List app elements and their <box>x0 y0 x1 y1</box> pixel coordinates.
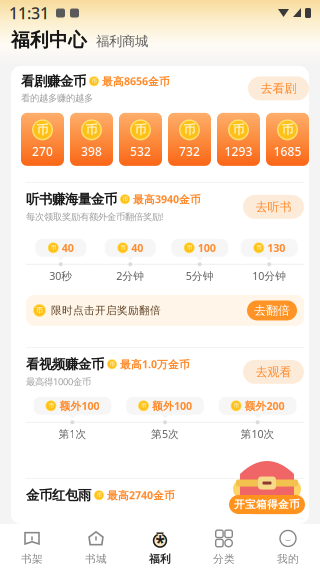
button[interactable]: 去观看 <box>243 360 304 384</box>
staticText: 最高2740金币 <box>107 488 175 502</box>
staticText: 1685 <box>273 143 301 159</box>
staticText: 币 <box>122 196 127 202</box>
staticText: 2分钟 <box>116 269 144 283</box>
button[interactable]: 书城 <box>64 524 128 568</box>
staticText: 看的越多赚的越多 <box>21 92 93 104</box>
staticText: 福利 <box>149 552 171 565</box>
staticText: 币 <box>134 122 146 137</box>
staticText: 看剧赚金币 <box>21 73 86 89</box>
button[interactable]: 去翻倍 <box>247 300 297 320</box>
staticText: 额外100 <box>59 399 99 413</box>
button[interactable]: 去看剧 <box>248 76 309 100</box>
button[interactable]: 开宝箱得金币 <box>229 446 305 510</box>
button[interactable]: 我的 <box>256 524 320 568</box>
staticText: 100 <box>198 241 216 255</box>
staticText: 币 <box>91 78 96 84</box>
staticText: 第1次 <box>58 427 86 441</box>
staticText: 币 <box>36 306 43 314</box>
staticText: 去翻倍 <box>254 303 290 318</box>
staticText: 1293 <box>224 143 252 159</box>
staticText: 限时点击开启奖励翻倍 <box>51 304 161 317</box>
staticText: 币 <box>234 402 239 409</box>
staticText: 最高得1000金币 <box>26 375 91 388</box>
staticText: 币 <box>96 492 101 498</box>
staticText: 最高3940金币 <box>133 192 201 206</box>
staticText: 币 <box>232 122 244 137</box>
staticText: 金币红包雨 <box>26 487 91 503</box>
button[interactable]: 福利商城 <box>96 33 148 51</box>
staticText: 11:31 <box>9 2 49 24</box>
staticText: 币 <box>141 402 146 409</box>
staticText: 40 <box>62 241 74 255</box>
staticText: 第10次 <box>241 427 275 441</box>
staticText: 分类 <box>213 552 235 565</box>
staticText: 最高1.0万金币 <box>120 357 190 371</box>
staticText: 币 <box>120 244 125 251</box>
staticText: 398 <box>81 143 102 159</box>
staticText: 币 <box>281 122 293 137</box>
staticText: 书架 <box>21 552 43 565</box>
staticText: 532 <box>130 143 151 159</box>
button[interactable]: 去听书 <box>243 195 304 219</box>
staticText: 额外100 <box>152 399 192 413</box>
staticText: 每次领取奖励有额外金币翻倍奖励! <box>26 210 164 223</box>
staticText: 听书赚海量金币 <box>26 191 117 207</box>
staticText: 5分钟 <box>186 269 214 283</box>
button[interactable]: 分类 <box>192 524 256 568</box>
staticText: 币 <box>48 402 53 409</box>
staticText: 732 <box>179 143 200 159</box>
staticText: 去看剧 <box>260 81 296 96</box>
staticText: 福利中心 <box>11 28 87 51</box>
button[interactable]: 书架 <box>0 524 64 568</box>
staticText: 第5次 <box>151 427 179 441</box>
staticText: 币 <box>256 244 261 251</box>
staticText: 领红包 <box>255 495 291 510</box>
staticText: 币 <box>183 122 195 137</box>
staticText: * <box>155 531 164 554</box>
staticText: 币 <box>109 361 114 367</box>
staticText: 币 <box>36 122 48 137</box>
staticText: 看视频赚金币 <box>26 356 104 372</box>
staticText: 币 <box>187 244 192 251</box>
staticText: 40 <box>131 241 143 255</box>
staticText: 30秒 <box>49 269 72 283</box>
staticText: 最高8656金币 <box>102 74 170 88</box>
staticText: 130 <box>267 241 285 255</box>
staticText: 去听书 <box>255 199 291 214</box>
staticText: 我的 <box>277 552 299 565</box>
staticText: 开宝箱得金币 <box>234 498 300 511</box>
button[interactable]: * <box>128 524 192 568</box>
staticText: 书城 <box>85 552 107 565</box>
staticText: 币 <box>51 244 56 251</box>
staticText: 币 <box>85 122 97 137</box>
staticText: 额外200 <box>245 399 285 413</box>
staticText: 去观看 <box>255 364 291 379</box>
staticText: 福利商城 <box>96 33 148 49</box>
staticText: 270 <box>32 143 53 159</box>
staticText: 10分钟 <box>252 269 286 283</box>
button[interactable]: 领红包 <box>243 491 304 515</box>
